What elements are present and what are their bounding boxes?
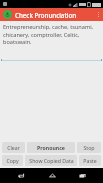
button[interactable]: Pronounce	[27, 142, 75, 153]
staticText: Entrepreneurship, cache, tsunami, chican…	[3, 23, 100, 45]
staticText: Show Copied Data	[29, 157, 74, 164]
button[interactable]: Home	[43, 168, 61, 183]
staticText: Paste	[83, 157, 97, 164]
staticText: Pronounce	[37, 144, 65, 151]
button[interactable]: Stop	[77, 142, 101, 153]
staticText: Clear	[7, 144, 20, 151]
button[interactable]: Entrepreneurship, cache, tsunami, chican…	[3, 23, 100, 45]
staticText: Copy	[6, 157, 19, 164]
button[interactable]: Paste	[79, 155, 101, 166]
button[interactable]: Recent apps	[73, 168, 91, 183]
button[interactable]: Show Copied Data	[25, 155, 77, 166]
button[interactable]: More options	[93, 8, 103, 21]
button[interactable]: Copy	[2, 155, 23, 166]
button[interactable]: Clear	[2, 142, 25, 153]
staticText: Check Pronunciation	[15, 11, 77, 19]
button[interactable]: Back	[12, 168, 30, 183]
staticText: Stop	[83, 144, 95, 151]
